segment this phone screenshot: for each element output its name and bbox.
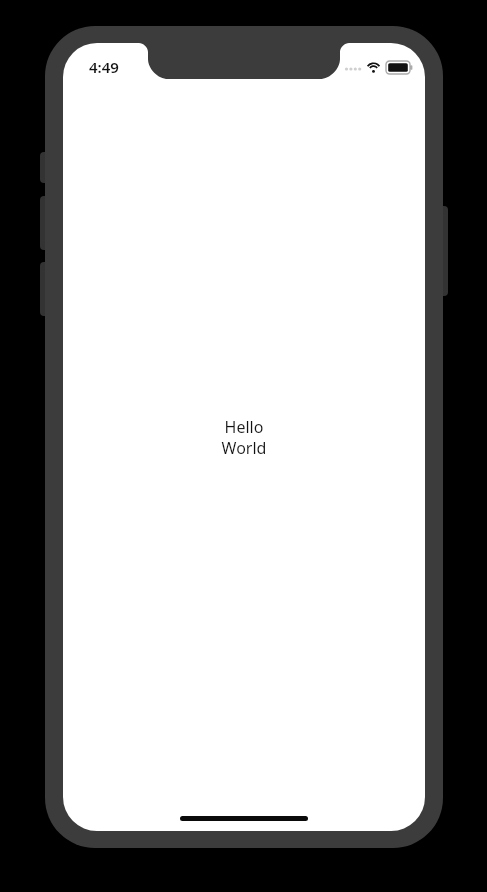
staticText: 4:49: [89, 57, 119, 77]
staticText: Hello World: [218, 416, 270, 459]
button[interactable]: Home indicator: [180, 816, 308, 821]
